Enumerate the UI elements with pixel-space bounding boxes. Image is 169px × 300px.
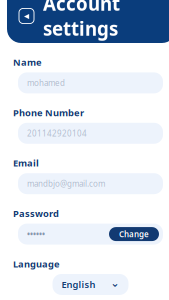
staticText: Language <box>13 258 60 270</box>
staticText: Account settings <box>43 0 120 41</box>
staticText: Password <box>13 207 59 220</box>
button[interactable]: Change <box>109 227 159 241</box>
staticText: Email <box>13 157 39 169</box>
staticText: •••••• <box>27 229 45 239</box>
staticText: Change <box>119 229 149 239</box>
staticText: mohamed <box>27 78 65 88</box>
staticText: mandbjo@gmail.com <box>27 178 105 189</box>
button[interactable]: English <box>52 274 128 295</box>
staticText: English <box>61 278 95 291</box>
staticText: ⌄ <box>110 277 119 289</box>
staticText: Phone Number <box>13 106 84 119</box>
staticText: ◀ <box>24 12 29 20</box>
staticText: Name <box>13 56 42 68</box>
button[interactable]: Back <box>19 8 34 23</box>
staticText: 201142920104 <box>27 128 87 139</box>
